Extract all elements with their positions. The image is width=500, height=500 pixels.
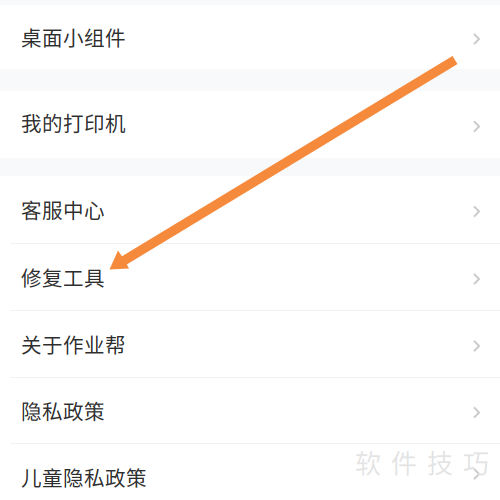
button[interactable]: 隐私政策 bbox=[0, 378, 500, 443]
staticText: 儿童隐私政策 bbox=[21, 462, 147, 492]
button[interactable]: 儿童隐私政策 bbox=[0, 444, 500, 500]
button[interactable]: 我的打印机 bbox=[0, 91, 500, 158]
staticText: 客服中心 bbox=[21, 195, 105, 224]
staticText: 隐私政策 bbox=[21, 396, 105, 425]
staticText: 我的打印机 bbox=[21, 108, 126, 137]
button[interactable]: 修复工具 bbox=[0, 244, 500, 310]
button[interactable]: 桌面小组件 bbox=[0, 5, 500, 69]
button[interactable]: 客服中心 bbox=[0, 176, 500, 243]
button[interactable]: 关于作业帮 bbox=[0, 311, 500, 377]
staticText: 桌面小组件 bbox=[21, 22, 126, 52]
staticText: 修复工具 bbox=[21, 262, 105, 292]
staticText: 关于作业帮 bbox=[21, 329, 126, 359]
staticText: 软件技巧 bbox=[355, 443, 489, 481]
